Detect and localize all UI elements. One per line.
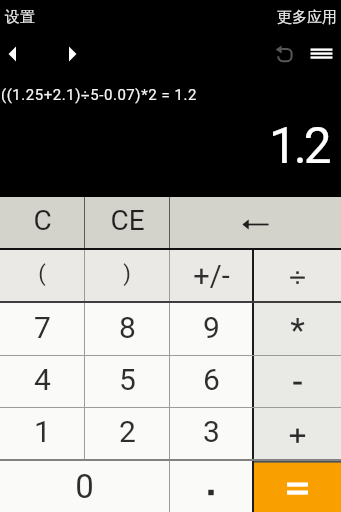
staticText: 8 <box>119 310 136 345</box>
staticText: * <box>290 310 305 350</box>
staticText: 0 <box>75 467 94 506</box>
staticText: +/- <box>193 259 230 293</box>
button[interactable]: 5 <box>85 356 169 407</box>
staticText: 更多应用 <box>277 8 337 27</box>
button[interactable]: 4 <box>0 356 84 407</box>
staticText: ) <box>123 261 131 287</box>
staticText: 2 <box>119 414 136 449</box>
staticText: 设置 <box>5 8 35 27</box>
button[interactable] <box>170 197 341 248</box>
button[interactable]: 6 <box>170 356 252 407</box>
staticText: 9 <box>203 310 220 345</box>
button[interactable]: 3 <box>170 408 252 459</box>
staticText: ( <box>38 261 46 287</box>
staticText: 4 <box>34 362 51 397</box>
button[interactable]: * <box>254 303 341 355</box>
button[interactable] <box>60 40 90 68</box>
button[interactable]: 更多应用 <box>277 0 341 27</box>
staticText: ((1.25+2.1)÷5-0.07)*2 = 1.2 <box>1 86 197 104</box>
button[interactable]: 0 <box>0 461 169 512</box>
staticText: C <box>33 204 52 237</box>
button[interactable] <box>254 250 341 301</box>
staticText: CE <box>110 204 145 237</box>
button[interactable] <box>304 40 338 68</box>
button[interactable]: +/- <box>170 250 252 301</box>
staticText: 7 <box>34 310 51 345</box>
staticText: 6 <box>203 362 220 397</box>
button[interactable] <box>0 40 30 68</box>
button[interactable] <box>170 461 252 512</box>
staticText: 1 <box>34 414 51 449</box>
button[interactable] <box>254 408 341 459</box>
staticText: 3 <box>203 414 220 449</box>
button[interactable]: CE <box>85 197 169 248</box>
button[interactable] <box>254 356 341 407</box>
button[interactable]: C <box>0 197 84 248</box>
button[interactable]: 设置 <box>0 0 35 27</box>
button[interactable]: 8 <box>85 303 169 355</box>
button[interactable]: ) <box>85 250 169 301</box>
button[interactable] <box>254 461 341 512</box>
button[interactable]: 7 <box>0 303 84 355</box>
button[interactable]: 1 <box>0 408 84 459</box>
staticText: 5 <box>119 362 136 397</box>
button[interactable] <box>270 40 298 68</box>
button[interactable]: 9 <box>170 303 252 355</box>
button[interactable]: 2 <box>85 408 169 459</box>
button[interactable]: ( <box>0 250 84 301</box>
staticText: 1.2 <box>269 117 329 175</box>
